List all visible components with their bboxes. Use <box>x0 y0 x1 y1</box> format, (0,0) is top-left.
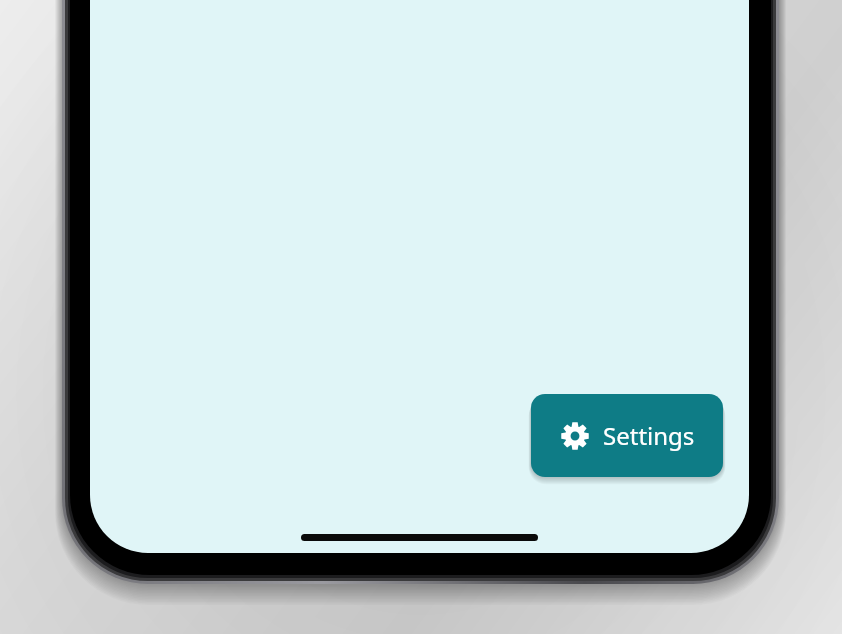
other: Settings <box>561 422 589 450</box>
button[interactable]: Settings <box>531 394 723 477</box>
staticText: Settings <box>603 419 695 452</box>
